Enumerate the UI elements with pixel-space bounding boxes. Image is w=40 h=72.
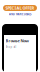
- staticText: Shop all: [5, 45, 16, 49]
- staticText: Browse Now: [5, 38, 28, 43]
- staticText: SPECIAL OFFER: [5, 5, 34, 11]
- button[interactable]: SPECIAL OFFER: [3, 5, 37, 11]
- staticText: AND MORE DEALS: [9, 12, 31, 16]
